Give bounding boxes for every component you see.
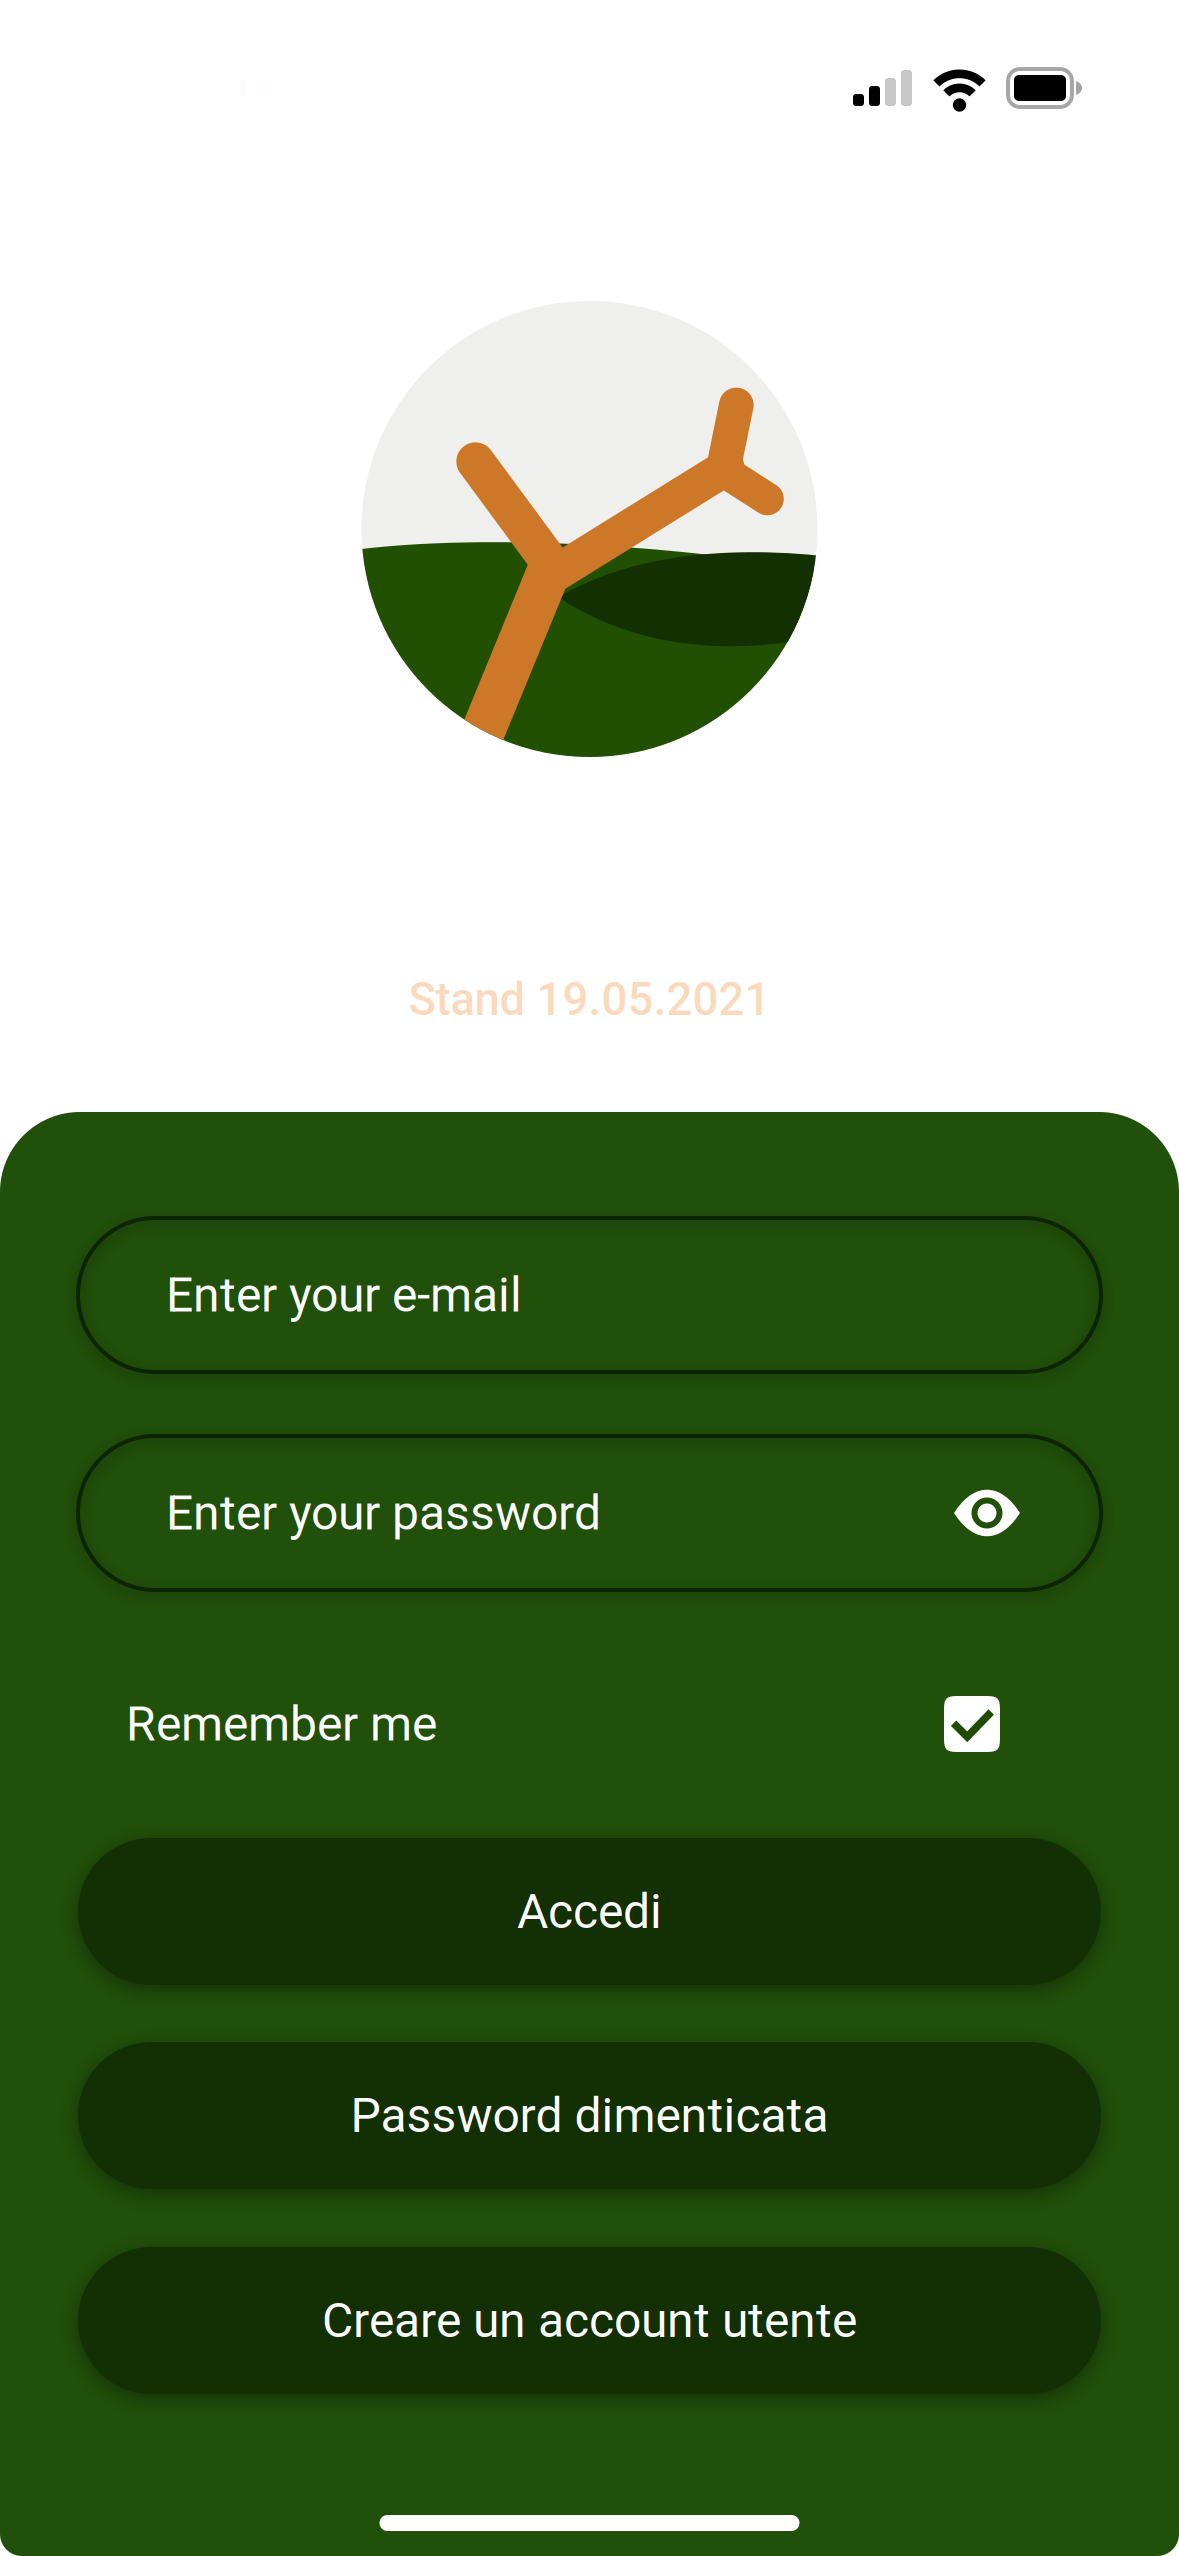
button[interactable]: Creare un account utente	[78, 2247, 1101, 2394]
button[interactable]: Remember me	[78, 1648, 1101, 1800]
staticText: Stand 19.05.2021	[408, 973, 770, 1026]
staticText: Remember me	[126, 1696, 437, 1752]
staticText: Accedi	[517, 1883, 662, 1940]
staticText: Creare un account utente	[322, 2292, 857, 2349]
staticText: Enter your e-mail	[166, 1267, 522, 1323]
staticText: Password dimenticata	[350, 2087, 828, 2144]
button[interactable]: Show password	[932, 1436, 1042, 1590]
staticText: Enter your password	[166, 1485, 601, 1541]
button[interactable]: Password dimenticata	[78, 2042, 1101, 2189]
button[interactable]: Accedi	[78, 1838, 1101, 1985]
